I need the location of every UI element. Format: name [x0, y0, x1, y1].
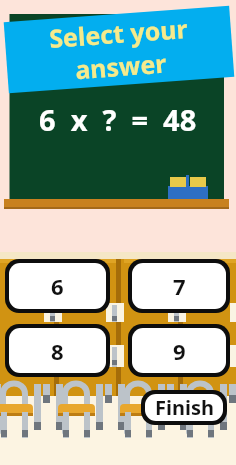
button[interactable]: Finish [145, 394, 223, 421]
staticText: Select your answer [48, 11, 191, 88]
staticText: 8 [51, 336, 64, 366]
staticText: 6 [51, 271, 64, 301]
button[interactable]: 9 [132, 328, 226, 373]
staticText: 6 x ? = 48 [39, 100, 197, 139]
button[interactable]: 7 [132, 263, 226, 309]
staticText: 9 [173, 336, 186, 366]
button[interactable]: 6 [9, 263, 106, 309]
button[interactable]: 8 [9, 328, 106, 373]
staticText: 7 [173, 271, 186, 301]
staticText: Finish [155, 394, 214, 421]
